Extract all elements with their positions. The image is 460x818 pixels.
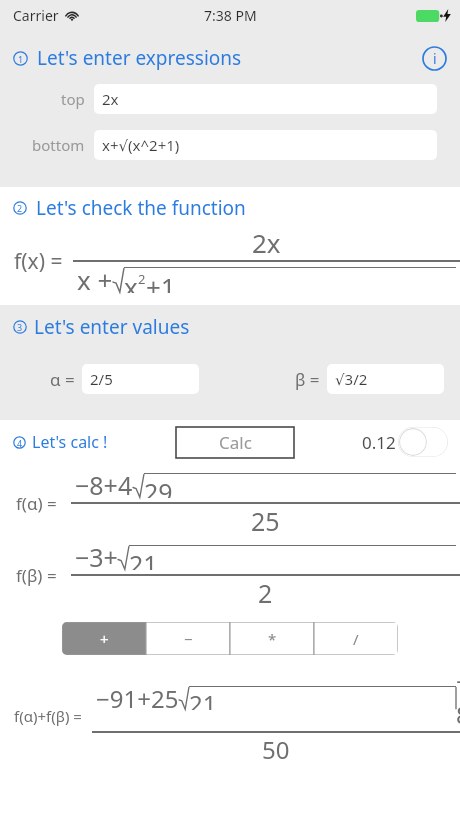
staticText: f(x) = [14,247,63,276]
staticText: 2x [102,89,119,109]
staticText: 7:38 PM [204,6,257,25]
staticText: 2x [252,225,281,260]
staticText: * [268,629,277,649]
staticText: i [433,49,437,68]
staticText: f(α)+f(β) = [14,706,82,726]
staticText: f(α) = [16,492,57,515]
staticText: 0.12 [362,431,396,454]
staticText: 21 [129,547,158,570]
staticText: 25 [251,504,280,538]
staticText: Let's calc ! [32,431,108,453]
staticText: top [61,89,85,109]
staticText: 3 [17,321,23,333]
button[interactable]: 2x [94,84,437,114]
staticText: x [124,269,138,293]
button[interactable]: 4 [13,431,108,453]
staticText: √3/2 [335,369,368,389]
staticText: +1 [146,269,176,293]
button[interactable]: Calc [176,427,294,458]
staticText: bottom [32,135,85,155]
staticText: Let's check the function [36,195,246,221]
staticText: 2 [17,202,23,214]
button[interactable]: − [146,622,230,655]
staticText: − [184,629,193,649]
staticText: Let's enter expressions [37,45,242,71]
staticText: Calc [219,431,252,454]
staticText: x + [77,262,113,297]
staticText: Let's enter values [34,314,190,340]
staticText: α = [50,368,75,391]
staticText: f(β) = [16,564,57,587]
staticText: + [100,629,109,649]
staticText: 2 [138,270,146,288]
staticText: 21 [189,687,217,710]
staticText: −3+ [75,540,118,574]
button[interactable]: + [62,622,146,655]
staticText: 1 [18,53,24,65]
button[interactable]: / [314,622,398,655]
button[interactable]: Information [418,42,450,74]
button[interactable]: * [230,622,314,655]
button[interactable]: x+√(x^2+1) [94,130,437,160]
staticText: 2 [258,576,273,610]
staticText: 4 [17,437,23,449]
staticText: 2/5 [90,369,113,389]
button[interactable]: √3/2 [327,364,444,394]
staticText: 50 [262,733,290,766]
staticText: −8+4 [75,468,133,502]
staticText: x+√(x^2+1) [102,135,180,155]
staticText: β = [295,368,320,391]
staticText: 29 [144,475,173,498]
button[interactable]: Decimal mode toggle [398,427,448,457]
staticText: / [353,629,359,649]
staticText: Carrier [13,6,59,25]
button[interactable]: 2/5 [82,364,199,394]
staticText: −91+25 [96,682,179,715]
